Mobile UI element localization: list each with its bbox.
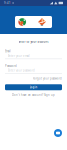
button[interactable]: Don't have an account? Sign up bbox=[5, 90, 62, 97]
staticText: Email bbox=[5, 49, 11, 53]
staticText: Enter your password bbox=[8, 69, 35, 72]
button[interactable]: Support chat bbox=[54, 129, 62, 137]
staticText: Password bbox=[5, 64, 17, 68]
staticText: Enter to your account bbox=[18, 40, 48, 43]
staticText: Don't have an account? Sign up bbox=[12, 93, 55, 97]
staticText: Forgot your password bbox=[33, 77, 62, 80]
button[interactable]: Forgot your password bbox=[5, 74, 62, 80]
staticText: 9:41 bbox=[4, 1, 11, 5]
staticText: Login bbox=[29, 85, 37, 89]
staticText: Enter your email bbox=[8, 54, 30, 58]
button[interactable]: Login bbox=[5, 84, 62, 90]
